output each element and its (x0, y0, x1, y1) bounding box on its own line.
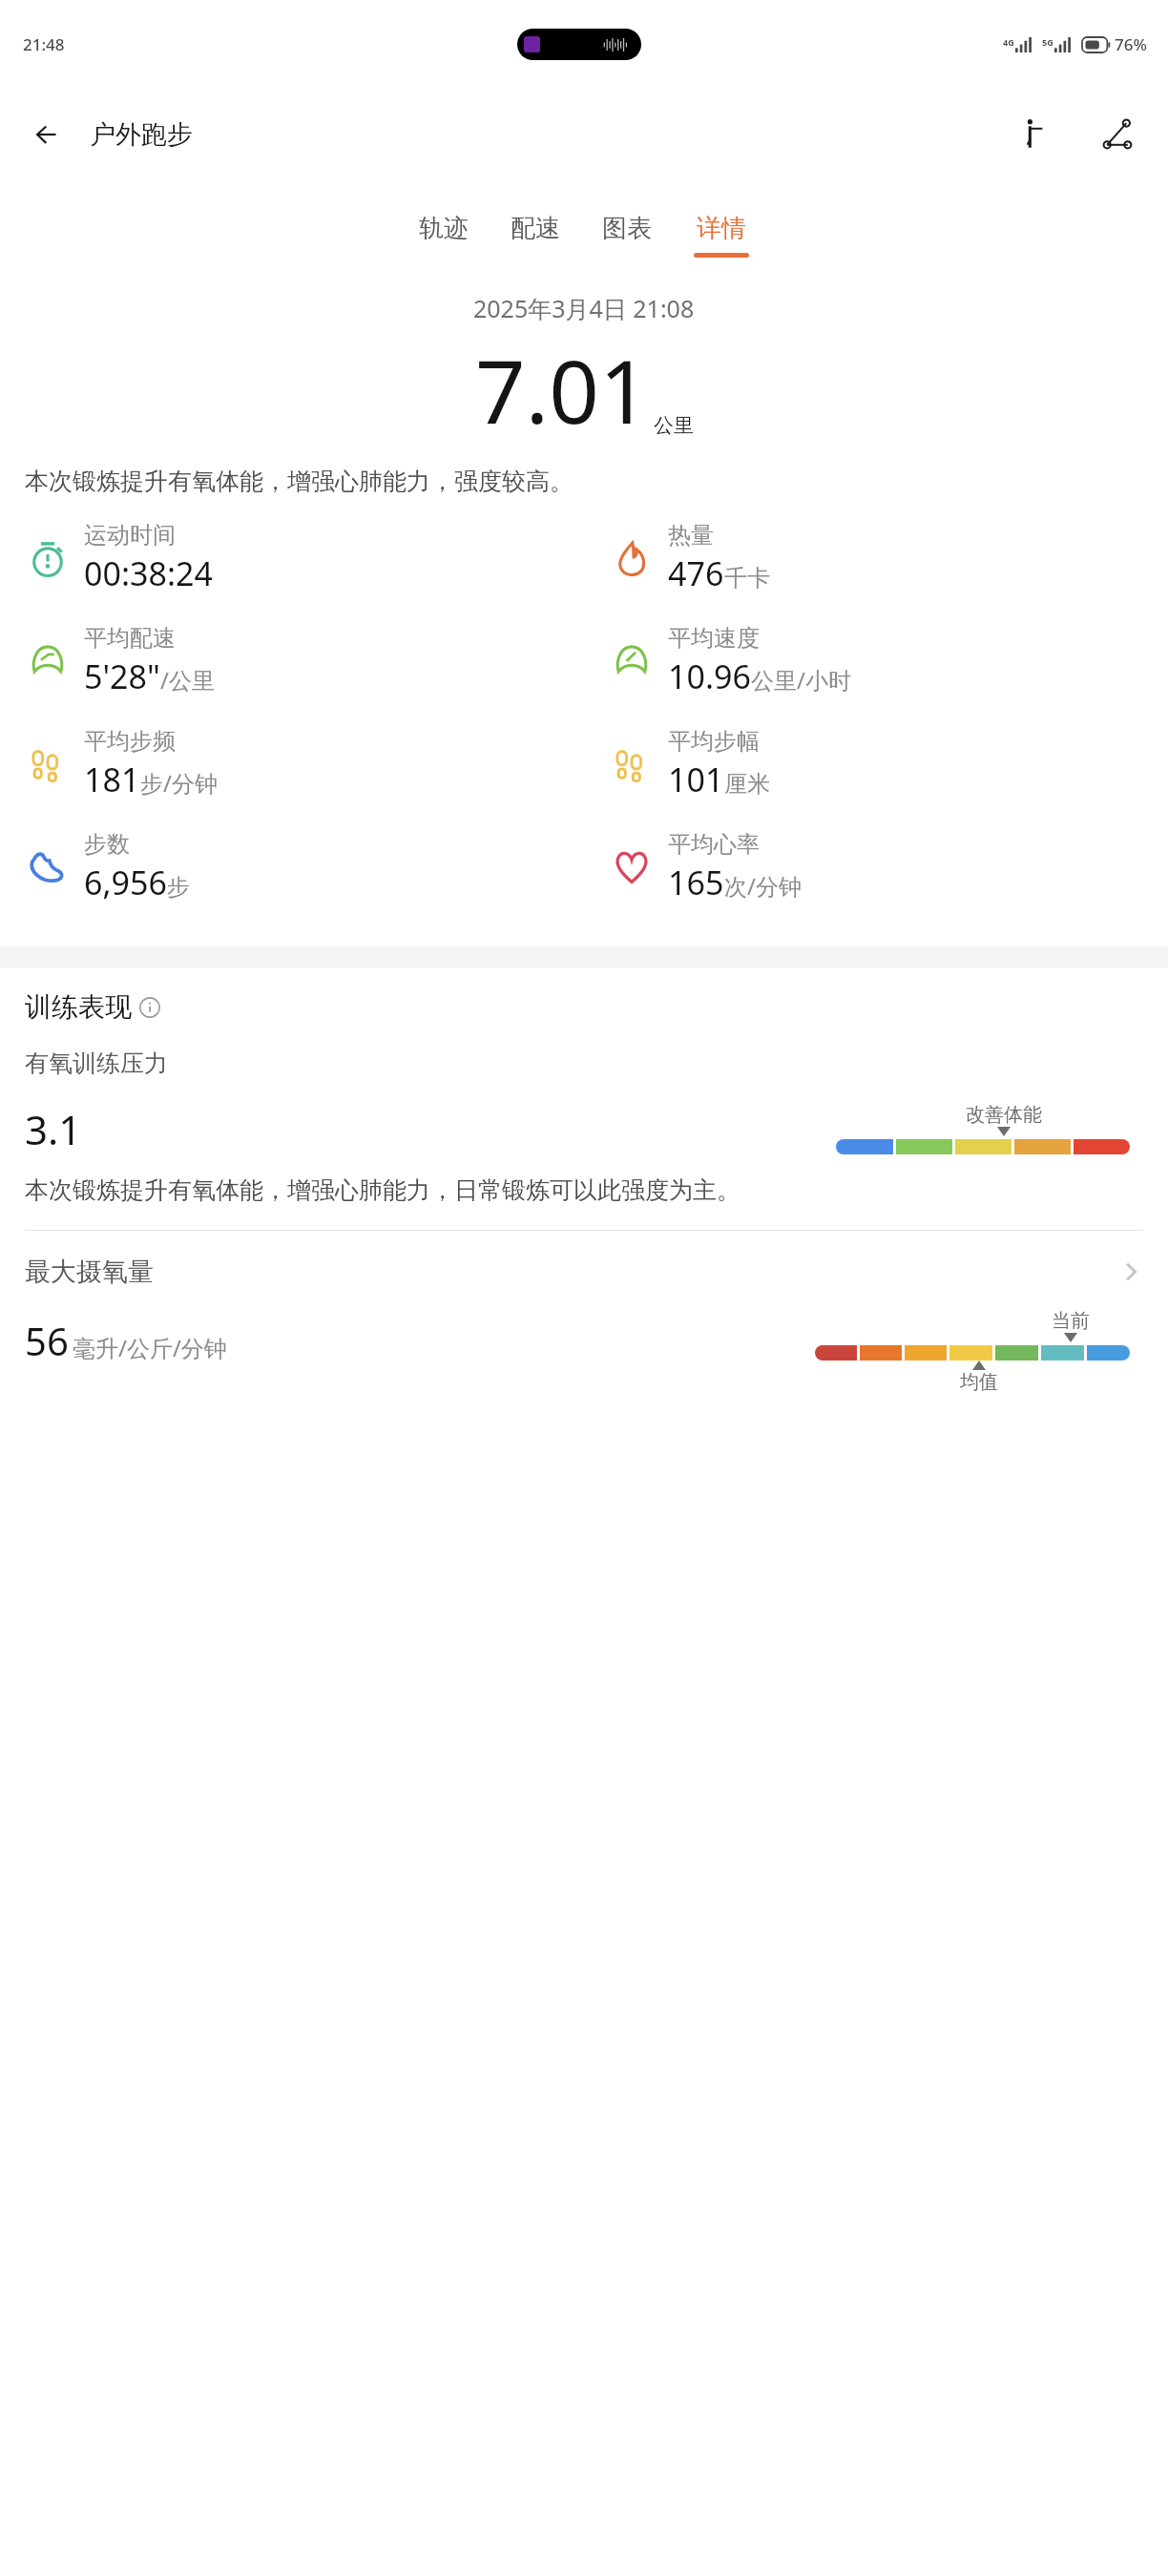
staticText: 181 (84, 758, 140, 801)
button[interactable]: 轨迹 (398, 207, 490, 263)
button[interactable]: 平均步频 (0, 723, 584, 805)
staticText: 训练表现 (25, 990, 132, 1024)
staticText: 公里 (654, 413, 694, 438)
staticText: 本次锻炼提升有氧体能，增强心肺能力，强度较高。 (25, 467, 1143, 496)
staticText: 21:48 (23, 33, 65, 55)
other: 查看详情 (1118, 1259, 1143, 1284)
button[interactable]: 热量 (584, 517, 1168, 599)
staticText: 本次锻炼提升有氧体能，增强心肺能力，日常锻炼可以此强度为主。 (25, 1175, 1143, 1205)
staticText: 476 (668, 551, 724, 595)
staticText: 101 (668, 758, 724, 801)
button[interactable]: 运动时间 (0, 517, 584, 599)
staticText: 平均步幅 (668, 727, 760, 756)
button[interactable]: 步数 (0, 826, 584, 908)
staticText: 76% (1115, 33, 1147, 55)
staticText: 步/分钟 (140, 767, 218, 799)
button[interactable]: 最大摄氧量 (0, 1256, 1168, 1288)
staticText: 步数 (84, 830, 130, 859)
button[interactable]: 详情 (673, 207, 770, 263)
staticText: 2025年3月4日 21:08 (473, 292, 695, 324)
staticText: 改善体能 (966, 1103, 1042, 1127)
button[interactable]: 平均心率 (584, 826, 1168, 908)
staticText: 平均步频 (84, 727, 176, 756)
button[interactable]: 运动姿态 (1004, 105, 1063, 164)
staticText: 图表 (602, 213, 652, 244)
button[interactable]: 配速 (490, 207, 581, 263)
staticText: 10.96 (668, 654, 751, 698)
staticText: 运动时间 (84, 521, 176, 550)
staticText: 平均速度 (668, 624, 760, 653)
staticText: 配速 (511, 213, 560, 244)
staticText: 56 (25, 1315, 69, 1366)
staticText: 7.01 (475, 330, 650, 449)
staticText: 最大摄氧量 (25, 1256, 154, 1288)
staticText: 4G (1003, 36, 1014, 48)
button[interactable]: 平均步幅 (584, 723, 1168, 805)
staticText: 轨迹 (419, 213, 469, 244)
staticText: 公里/小时 (751, 664, 851, 696)
staticText: 毫升/公斤/分钟 (73, 1332, 227, 1363)
other: 说明 (139, 997, 160, 1018)
staticText: 户外跑步 (90, 118, 193, 151)
staticText: 5G (1042, 36, 1053, 48)
staticText: 次/分钟 (724, 870, 802, 902)
staticText: 当前 (1052, 1309, 1090, 1333)
staticText: 5'28" (84, 654, 160, 698)
staticText: 3.1 (25, 1102, 82, 1156)
button[interactable]: 平均配速 (0, 620, 584, 702)
staticText: 均值 (960, 1370, 998, 1394)
staticText: 详情 (697, 213, 746, 244)
staticText: 有氧训练压力 (25, 1049, 168, 1078)
staticText: 00:38:24 (84, 551, 213, 595)
staticText: 厘米 (724, 770, 770, 799)
button[interactable]: 训练表现 (25, 990, 160, 1024)
button[interactable]: 返回 (19, 105, 78, 164)
staticText: 平均心率 (668, 830, 760, 859)
staticText: 165 (668, 861, 724, 904)
staticText: 平均配速 (84, 624, 176, 653)
staticText: /公里 (160, 664, 215, 696)
staticText: 千卡 (724, 564, 770, 592)
button[interactable]: 分享 (1088, 105, 1147, 164)
button[interactable]: 图表 (581, 207, 673, 263)
staticText: 6,956 (84, 861, 167, 904)
staticText: 步 (167, 873, 190, 902)
staticText: 热量 (668, 521, 714, 550)
button[interactable]: 平均速度 (584, 620, 1168, 702)
